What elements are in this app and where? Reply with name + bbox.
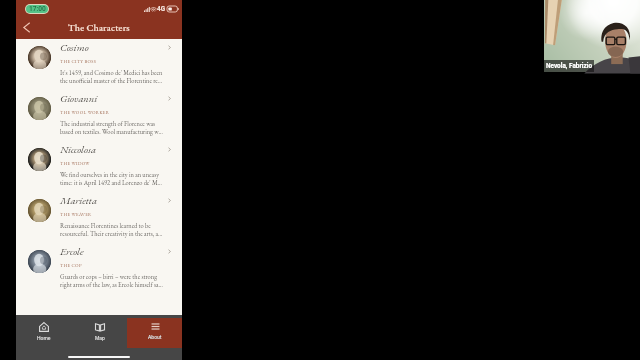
- staticText: Cosimo: [60, 40, 89, 54]
- staticText: The industrial strength of Florence was …: [60, 120, 164, 135]
- staticText: Guards or cops – birri – were the strong…: [60, 273, 164, 288]
- staticText: Niccolosa: [60, 142, 97, 156]
- button[interactable]: About: [127, 318, 182, 348]
- staticText: About: [148, 334, 162, 340]
- button[interactable]: Giovanni: [16, 90, 182, 141]
- button[interactable]: Cosimo: [16, 39, 182, 90]
- staticText: THE WEAVER: [60, 211, 92, 217]
- staticText: Marietta: [60, 193, 98, 207]
- button[interactable]: Ercole: [16, 243, 182, 294]
- button[interactable]: Marietta: [16, 192, 182, 243]
- staticText: Ercole: [60, 244, 84, 258]
- staticText: THE WIDOW: [60, 160, 90, 166]
- staticText: We find ourselves in the city in an unea…: [60, 171, 164, 186]
- staticText: Renaissance Florentines learned to be re…: [60, 222, 164, 237]
- button[interactable]: Home: [16, 318, 72, 348]
- staticText: 17:00: [29, 5, 46, 13]
- staticText: Nevola, Fabrizio: [546, 62, 592, 70]
- staticText: THE COP: [60, 262, 82, 268]
- staticText: It's 1459, and Cosimo de' Medici has bee…: [60, 69, 164, 84]
- staticText: Map: [95, 335, 105, 341]
- staticText: Home: [37, 335, 51, 341]
- staticText: THE WOOL WORKER: [60, 109, 110, 115]
- staticText: The Characters: [68, 21, 130, 34]
- button[interactable]: Niccolosa: [16, 141, 182, 192]
- staticText: THE CITY BOSS: [60, 58, 97, 64]
- button[interactable]: Back: [16, 18, 36, 39]
- button[interactable]: Map: [72, 318, 127, 348]
- staticText: Giovanni: [60, 91, 98, 105]
- staticText: 4G: [157, 5, 166, 13]
